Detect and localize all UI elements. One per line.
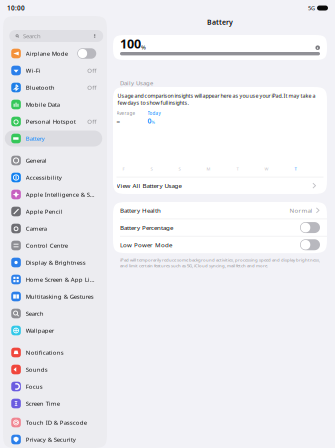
button[interactable]: Notifications xyxy=(1,344,109,361)
button[interactable]: Privacy & Security xyxy=(1,431,109,448)
button[interactable]: Low Power Mode xyxy=(113,236,327,253)
button[interactable]: View All Battery Usage xyxy=(109,177,323,194)
button[interactable]: Bluetooth xyxy=(1,79,109,96)
staticText: View All Battery Usage xyxy=(116,182,181,190)
staticText: Search xyxy=(26,309,44,317)
staticText: Battery Percentage xyxy=(120,223,173,232)
button[interactable]: Apple Pencil xyxy=(1,203,109,220)
staticText: Display & Brightness xyxy=(26,258,86,266)
staticText: Off xyxy=(87,66,96,74)
staticText: Battery xyxy=(26,134,45,142)
button[interactable]: Screen Time xyxy=(1,395,109,412)
staticText: Bluetooth xyxy=(26,83,55,91)
staticText: Daily Usage xyxy=(120,79,153,87)
staticText: 10:00 xyxy=(7,4,25,12)
staticText: Low Power Mode xyxy=(120,241,172,249)
staticText: Airplane Mode xyxy=(26,49,68,57)
staticText: Average xyxy=(116,110,135,116)
staticText: – xyxy=(116,116,119,126)
button[interactable]: Battery Health xyxy=(113,202,327,219)
staticText: F xyxy=(122,166,124,172)
staticText: 100 xyxy=(120,35,141,52)
button[interactable]: Battery xyxy=(1,130,109,147)
staticText: Screen Time xyxy=(26,399,60,407)
staticText: Control Centre xyxy=(26,241,68,249)
staticText: % xyxy=(141,43,146,51)
button[interactable]: Sounds xyxy=(1,361,109,378)
staticText: Privacy & Security xyxy=(26,435,76,443)
staticText: Home Screen & App Library xyxy=(26,275,95,283)
button[interactable]: Home Screen & App Library xyxy=(1,271,109,288)
button[interactable]: Control Centre xyxy=(1,237,109,254)
staticText: S xyxy=(178,166,180,172)
staticText: Off xyxy=(87,83,96,91)
staticText: Sounds xyxy=(26,365,48,373)
staticText: T xyxy=(236,166,238,172)
staticText: Search xyxy=(23,32,41,40)
button[interactable]: Accessibility xyxy=(1,169,109,186)
staticText: Wallpaper xyxy=(26,326,54,334)
staticText: 0 xyxy=(147,116,151,126)
staticText: General xyxy=(26,156,47,164)
staticText: Usage and comparison insights will appea… xyxy=(117,92,315,106)
staticText: Battery Health xyxy=(120,206,161,214)
button[interactable]: Display & Brightness xyxy=(1,254,109,271)
staticText: Apple Intelligence & Siri xyxy=(26,190,95,198)
staticText: Personal Hotspot xyxy=(26,117,76,125)
staticText: T xyxy=(294,166,296,172)
staticText: Camera xyxy=(26,224,47,232)
button[interactable]: Focus xyxy=(1,378,109,395)
button[interactable]: Search xyxy=(9,30,103,42)
button[interactable]: Multitasking & Gestures xyxy=(1,288,109,305)
staticText: Notifications xyxy=(26,348,64,356)
staticText: Focus xyxy=(26,382,43,390)
staticText: Touch ID & Passcode xyxy=(26,418,87,426)
button[interactable]: Mobile Data xyxy=(1,96,109,113)
staticText: iPad will temporarily reduce some backgr… xyxy=(120,257,320,268)
staticText: Accessibility xyxy=(26,173,62,181)
button[interactable]: Search xyxy=(1,305,109,322)
staticText: Mobile Data xyxy=(26,100,60,108)
staticText: Today xyxy=(147,110,160,116)
button[interactable]: Wi-Fi xyxy=(1,62,109,79)
staticText: M xyxy=(206,166,210,172)
button[interactable]: Battery Percentage xyxy=(113,219,327,236)
button[interactable]: Camera xyxy=(1,220,109,237)
staticText: Apple Pencil xyxy=(26,207,63,215)
staticText: S xyxy=(150,166,152,172)
staticText: Normal xyxy=(290,206,313,214)
staticText: W xyxy=(264,166,268,172)
button[interactable]: Wallpaper xyxy=(1,322,109,339)
staticText: 5G xyxy=(308,4,315,12)
button[interactable]: Apple Intelligence & Siri xyxy=(1,186,109,203)
staticText: Wi-Fi xyxy=(26,66,41,74)
button[interactable]: Touch ID & Passcode xyxy=(1,414,109,431)
staticText: Multitasking & Gestures xyxy=(26,292,94,300)
button[interactable]: Personal Hotspot xyxy=(1,113,109,130)
staticText: Battery xyxy=(207,17,233,27)
button[interactable]: Airplane Mode xyxy=(1,45,109,62)
button[interactable]: 100 xyxy=(113,35,327,60)
button[interactable]: General xyxy=(1,152,109,169)
staticText: Off xyxy=(87,117,96,125)
staticText: % xyxy=(151,119,155,125)
